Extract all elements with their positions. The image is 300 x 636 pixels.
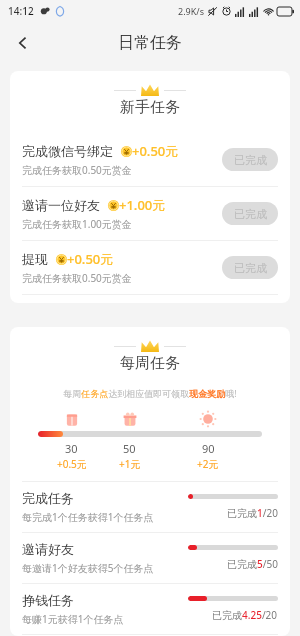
button[interactable]: 已完成: [222, 202, 278, 225]
button[interactable]: 邀请一位好友: [10, 187, 290, 240]
staticText: 已完成: [234, 207, 267, 221]
staticText: 30: [65, 441, 78, 456]
button[interactable]: 已完成: [222, 256, 278, 279]
button[interactable]: 挣钱任务: [10, 584, 290, 634]
staticText: 挣钱任务: [22, 592, 74, 608]
button[interactable]: 邀请好友: [10, 533, 290, 583]
staticText: 完成任务获取0.50元赏金: [22, 163, 132, 177]
button[interactable]: Back: [6, 26, 40, 60]
staticText: 90: [202, 441, 215, 456]
staticText: 每周任务: [10, 354, 290, 373]
staticText: 每完成1个任务获得1个任务点: [22, 510, 154, 524]
staticText: 提现: [22, 251, 48, 267]
staticText: 新手任务: [10, 98, 290, 117]
staticText: 完成任务获取1.00元赏金: [22, 217, 132, 231]
staticText: 每邀请1个好友获得5个任务点: [22, 561, 154, 575]
button[interactable]: 完成任务: [10, 482, 290, 532]
button[interactable]: 提现: [10, 241, 290, 294]
staticText: 每赚1元获得1个任务点: [22, 612, 124, 626]
staticText: 每周任务点达到相应值即可领取现金奖励哦!: [10, 387, 290, 399]
staticText: 50: [123, 441, 136, 456]
button[interactable]: 完成微信号绑定: [10, 133, 290, 186]
staticText: +1.00元: [119, 196, 166, 214]
staticText: +0.50元: [67, 250, 114, 268]
staticText: 日常任务: [118, 33, 182, 53]
staticText: 邀请好友: [22, 541, 74, 557]
staticText: 完成微信号绑定: [22, 143, 113, 159]
staticText: +1元: [119, 457, 141, 471]
staticText: 14:12: [8, 4, 34, 18]
staticText: 已完成5/50: [227, 557, 278, 571]
staticText: 完成任务: [22, 490, 74, 506]
staticText: +2元: [197, 457, 219, 471]
staticText: 完成任务获取0.50元赏金: [22, 271, 132, 285]
staticText: 已完成: [234, 261, 267, 275]
staticText: 已完成4.25/20: [212, 608, 278, 622]
staticText: 已完成: [234, 153, 267, 167]
staticText: +0.5元: [57, 457, 87, 471]
staticText: 2.9K/s: [178, 5, 204, 17]
staticText: 已完成1/20: [227, 506, 278, 520]
staticText: +0.50元: [132, 142, 179, 160]
staticText: 邀请一位好友: [22, 197, 100, 213]
button[interactable]: 已完成: [222, 148, 278, 171]
